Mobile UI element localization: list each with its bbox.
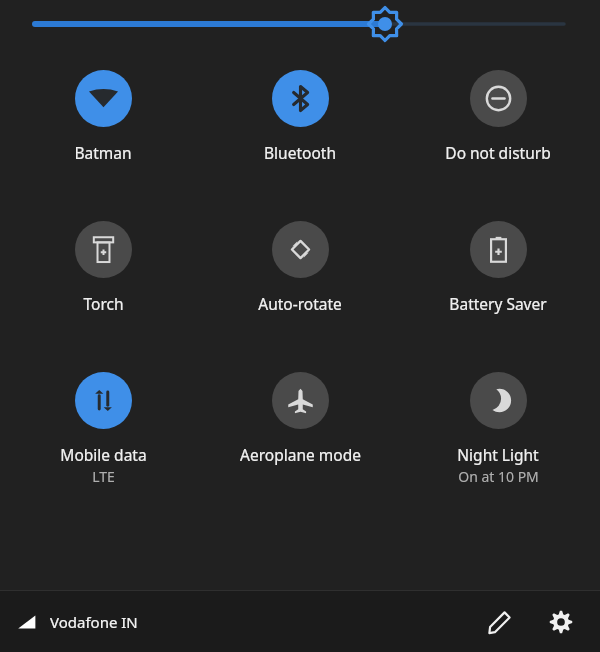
button[interactable]: Battery Saver [403, 219, 593, 316]
staticText: Mobile data [60, 444, 147, 465]
button[interactable]: Night Light [403, 370, 593, 488]
button[interactable]: Do not disturb [403, 68, 593, 165]
button[interactable]: Bluetooth [205, 68, 395, 165]
button[interactable]: Auto-rotate [205, 219, 395, 316]
staticText: Aeroplane mode [240, 444, 361, 465]
staticText: On at 10 PM [458, 467, 539, 486]
staticText: LTE [92, 467, 115, 486]
button[interactable]: Settings [538, 599, 584, 645]
staticText: Batman [74, 142, 132, 163]
button[interactable]: Vodafone IN [16, 605, 138, 639]
staticText: Night Light [457, 444, 539, 465]
button[interactable]: Aeroplane mode [205, 370, 395, 467]
button[interactable]: Brightness slider [0, 0, 600, 48]
staticText: Battery Saver [449, 293, 547, 314]
staticText: Torch [83, 293, 124, 314]
button[interactable]: Mobile data [8, 370, 198, 488]
button[interactable]: Torch [8, 219, 198, 316]
button[interactable]: Batman [8, 68, 198, 165]
staticText: Do not disturb [445, 142, 551, 163]
staticText: Bluetooth [264, 142, 336, 163]
button[interactable]: Edit [476, 599, 522, 645]
staticText: Vodafone IN [50, 612, 138, 632]
staticText: Auto-rotate [258, 293, 342, 314]
